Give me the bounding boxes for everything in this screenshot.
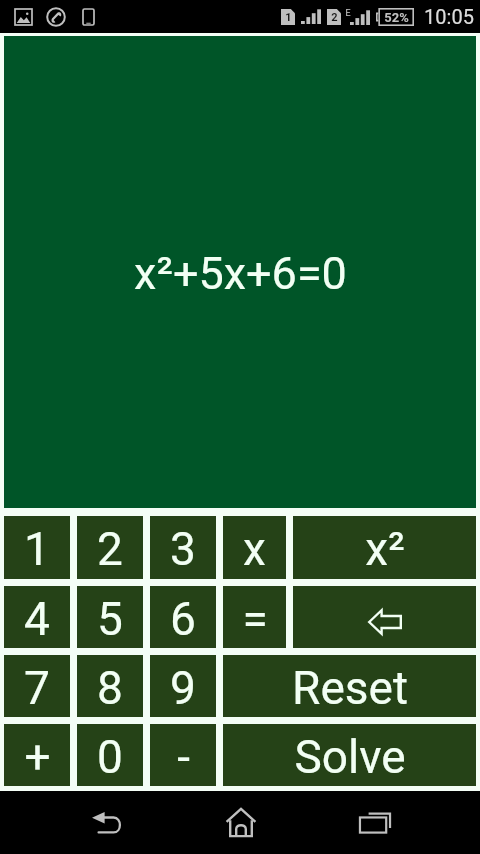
staticText: E: [345, 8, 351, 19]
button[interactable]: Reset: [223, 655, 476, 717]
staticText: 4: [24, 592, 50, 646]
staticText: 8: [97, 661, 123, 715]
button[interactable]: 5: [77, 586, 143, 648]
staticText: 1: [24, 522, 50, 576]
staticText: 5: [97, 592, 123, 646]
button[interactable]: Solve: [223, 724, 476, 786]
button[interactable]: 8: [77, 655, 143, 717]
button[interactable]: -: [150, 724, 216, 786]
button[interactable]: 0: [77, 724, 143, 786]
staticText: x²: [365, 522, 405, 576]
staticText: 2: [331, 11, 338, 24]
button[interactable]: Home: [174, 791, 308, 854]
button[interactable]: x²: [293, 516, 476, 579]
staticText: -: [177, 730, 190, 784]
staticText: 9: [170, 661, 196, 715]
staticText: 3: [170, 522, 196, 576]
button[interactable]: Back: [40, 791, 174, 854]
button[interactable]: 2: [77, 516, 143, 579]
button[interactable]: x: [223, 516, 286, 579]
staticText: 7: [24, 661, 50, 715]
button[interactable]: Recent apps: [308, 791, 442, 854]
button[interactable]: Backspace: [293, 586, 476, 648]
staticText: +: [24, 730, 51, 784]
button[interactable]: 1: [4, 516, 70, 579]
staticText: x: [243, 522, 266, 576]
staticText: =: [242, 592, 268, 646]
staticText: Solve: [294, 730, 406, 784]
button[interactable]: 7: [4, 655, 70, 717]
button[interactable]: 6: [150, 586, 216, 648]
button[interactable]: =: [223, 586, 286, 648]
staticText: Reset: [292, 661, 408, 715]
staticText: x²+5x+6=0: [134, 247, 347, 300]
button[interactable]: +: [4, 724, 70, 786]
button[interactable]: 3: [150, 516, 216, 579]
staticText: 52%: [384, 10, 409, 25]
button[interactable]: 4: [4, 586, 70, 648]
staticText: 0: [97, 730, 123, 784]
staticText: 10:05: [424, 5, 474, 28]
staticText: 6: [170, 592, 196, 646]
button[interactable]: 9: [150, 655, 216, 717]
staticText: 1: [285, 11, 292, 24]
staticText: 2: [97, 522, 123, 576]
